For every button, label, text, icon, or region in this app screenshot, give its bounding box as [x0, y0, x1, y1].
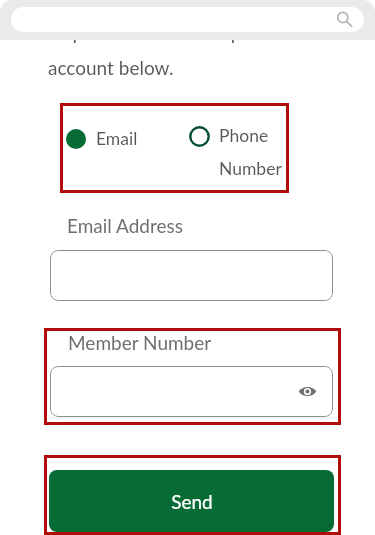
button[interactable]	[50, 250, 333, 301]
staticText: Phone Number	[219, 125, 282, 179]
staticText: account below.	[48, 56, 174, 79]
staticText: To proceed enter the phone or email on t…	[48, 21, 375, 44]
button[interactable]: Search	[11, 7, 364, 32]
staticText: Email Address	[67, 214, 183, 237]
button[interactable]: Phone Number	[189, 125, 252, 179]
other: Search	[336, 11, 353, 28]
button[interactable]: Send	[49, 470, 334, 532]
button[interactable]: Email	[66, 128, 108, 149]
staticText: Send	[171, 490, 213, 513]
button[interactable]: Show member number	[50, 366, 333, 417]
staticText: Email	[96, 128, 138, 149]
other: Show member number	[298, 382, 317, 401]
staticText: Member Number	[68, 331, 212, 354]
